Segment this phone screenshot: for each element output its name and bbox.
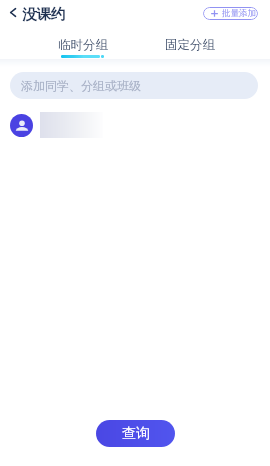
staticText: 添加同学、分组或班级 — [21, 78, 141, 93]
button[interactable]: 固定分组 — [151, 34, 228, 60]
staticText: 查询 — [122, 425, 150, 443]
button[interactable]: 查询 — [96, 420, 175, 447]
staticText: 固定分组 — [165, 37, 215, 53]
button[interactable]: 添加同学、分组或班级 — [10, 72, 258, 99]
button[interactable]: Back — [6, 2, 72, 26]
staticText: 没课约 — [22, 5, 66, 23]
button[interactable]: 批量添加 — [203, 7, 258, 20]
staticText: 临时分组 — [58, 37, 108, 53]
button[interactable]: 临时分组 — [44, 34, 121, 60]
staticText: 批量添加 — [222, 8, 256, 19]
button[interactable] — [0, 112, 270, 138]
